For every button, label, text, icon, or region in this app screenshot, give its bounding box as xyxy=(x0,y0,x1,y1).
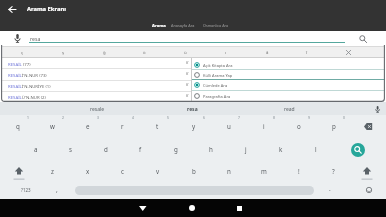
staticText: Cümlede Ara xyxy=(203,83,228,88)
button[interactable]: resale xyxy=(72,105,122,113)
button[interactable]: resa xyxy=(167,105,217,113)
button[interactable]: RESAİL (77) xyxy=(2,58,190,69)
button[interactable]: ?123 xyxy=(10,183,42,197)
staticText: Arama xyxy=(152,23,166,29)
button[interactable] xyxy=(133,201,153,215)
staticText: Arama Ekranı xyxy=(27,5,66,13)
button[interactable] xyxy=(192,59,292,69)
button[interactable]: s xyxy=(53,139,88,159)
staticText: i xyxy=(263,122,265,130)
staticText: 3 xyxy=(97,115,99,120)
button[interactable] xyxy=(6,3,18,15)
button[interactable] xyxy=(182,201,202,215)
button[interactable]: r xyxy=(105,116,140,136)
staticText: , xyxy=(56,185,58,194)
button[interactable]: RESAİLÜ'N-NUR (2) xyxy=(2,91,190,102)
button[interactable]: l xyxy=(298,139,333,159)
button[interactable]: g xyxy=(158,139,193,159)
staticText: Külli Arama Yap xyxy=(203,73,233,78)
staticText: Anasayfa Ara xyxy=(171,23,195,28)
staticText: RESAİLİ'N-NUR (73) xyxy=(8,72,47,78)
button[interactable]: ! xyxy=(281,161,316,181)
button[interactable]: i xyxy=(246,116,281,136)
button[interactable]: n xyxy=(211,161,246,181)
button[interactable]: ü xyxy=(178,47,192,57)
button[interactable]: Osmanlıca Ara xyxy=(197,20,234,31)
button[interactable]: v xyxy=(140,161,175,181)
button[interactable] xyxy=(192,90,292,100)
staticText: d xyxy=(104,145,108,153)
staticText: Açık Kitapta Ara xyxy=(203,63,233,68)
button[interactable]: ? xyxy=(316,161,351,181)
button[interactable]: â xyxy=(260,47,274,57)
button[interactable] xyxy=(342,47,354,57)
button[interactable]: j xyxy=(228,139,263,159)
button[interactable]: Anasayfa Ara xyxy=(163,20,202,31)
button[interactable] xyxy=(371,103,384,115)
button[interactable]: b xyxy=(176,161,211,181)
button[interactable]: ı xyxy=(219,47,233,57)
button[interactable]: e xyxy=(70,116,105,136)
button[interactable] xyxy=(350,116,386,136)
staticText: 0 xyxy=(343,115,345,120)
staticText: a xyxy=(34,145,38,153)
button[interactable]: o xyxy=(281,116,316,136)
button[interactable]: ş xyxy=(56,47,70,57)
button[interactable] xyxy=(192,70,292,80)
button[interactable] xyxy=(11,163,27,181)
button[interactable]: ç xyxy=(15,47,29,57)
staticText: p xyxy=(332,122,336,130)
button[interactable]: t xyxy=(140,116,175,136)
button[interactable] xyxy=(229,201,249,215)
button[interactable] xyxy=(351,143,365,157)
button[interactable]: RESAİLİ'N-NURİYE (1) xyxy=(2,80,190,91)
staticText: h xyxy=(209,145,213,153)
button[interactable]: read xyxy=(264,105,314,113)
button[interactable]: a xyxy=(18,139,53,159)
staticText: RESAİLÜ'N-NUR (2) xyxy=(8,94,46,100)
staticText: t xyxy=(156,122,159,130)
button[interactable]: k xyxy=(263,139,298,159)
button[interactable]: d xyxy=(88,139,123,159)
staticText: ğ xyxy=(103,49,106,55)
button[interactable]: z xyxy=(35,161,70,181)
staticText: e xyxy=(86,122,90,130)
button[interactable]: c xyxy=(105,161,140,181)
button[interactable] xyxy=(360,182,377,197)
button[interactable]: Arama xyxy=(148,20,170,31)
button[interactable]: p xyxy=(316,116,351,136)
staticText: RESAİL (77) xyxy=(8,61,31,67)
staticText: x xyxy=(86,167,90,175)
button[interactable]: resa xyxy=(30,34,48,42)
button[interactable]: q xyxy=(0,116,35,136)
button[interactable]: x xyxy=(70,161,105,181)
button[interactable]: u xyxy=(211,116,246,136)
button[interactable]: m xyxy=(246,161,281,181)
staticText: k xyxy=(279,145,283,153)
staticText: r xyxy=(121,122,124,130)
button[interactable]: , xyxy=(47,182,67,196)
button[interactable]: . xyxy=(320,181,340,195)
staticText: RESAİLİ'N-NURİYE (1) xyxy=(8,83,51,89)
button[interactable]: w xyxy=(35,116,70,136)
button[interactable]: ğ xyxy=(97,47,111,57)
staticText: ! xyxy=(298,167,300,175)
button[interactable]: f xyxy=(123,139,158,159)
staticText: 8 xyxy=(273,115,275,120)
staticText: ı xyxy=(225,49,227,55)
button[interactable]: ö xyxy=(137,47,151,57)
button[interactable] xyxy=(9,31,25,46)
button[interactable]: î xyxy=(300,47,314,57)
button[interactable] xyxy=(192,80,292,90)
staticText: s xyxy=(69,145,72,153)
button[interactable] xyxy=(359,163,375,181)
staticText: w xyxy=(50,122,55,130)
button[interactable]: y xyxy=(176,116,211,136)
staticText: y xyxy=(192,122,196,130)
staticText: o xyxy=(297,122,301,130)
staticText: ü xyxy=(184,49,187,55)
button[interactable]: RESAİLİ'N-NUR (73) xyxy=(2,69,190,80)
button[interactable] xyxy=(355,32,371,47)
button[interactable]: h xyxy=(193,139,228,159)
